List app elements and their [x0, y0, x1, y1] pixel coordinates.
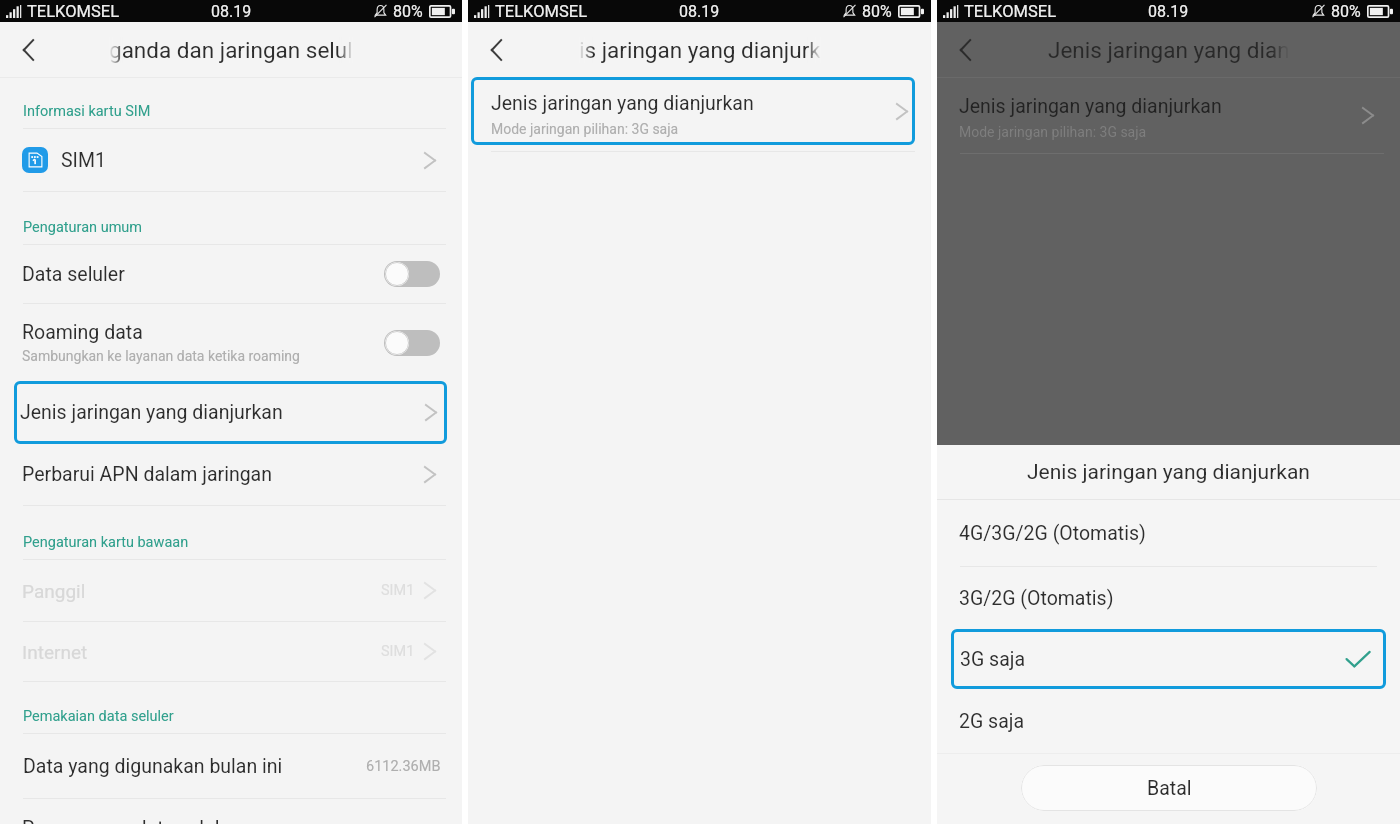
button[interactable]: Data yang digunakan bulan ini [0, 734, 462, 798]
button[interactable] [384, 330, 440, 356]
staticText: Informasi kartu SIM [23, 103, 151, 120]
button[interactable]: 4G/3G/2G (Otomatis) [937, 500, 1400, 566]
staticText: 08.19 [679, 2, 720, 21]
staticText: TELKOMSEL [27, 2, 120, 21]
button[interactable]: 3G saja [951, 629, 1386, 689]
staticText: 08.19 [211, 2, 252, 21]
button[interactable]: Roaming data [0, 304, 462, 381]
staticText: ganda dan jaringan selul [109, 37, 353, 63]
button[interactable]: Back [0, 22, 58, 77]
staticText: 80% [1331, 2, 1361, 21]
button[interactable]: Perbarui APN dalam jaringan [0, 444, 462, 505]
staticText: 2G saja [959, 710, 1025, 733]
button[interactable]: Jenis jaringan yang dianjurkan [471, 77, 915, 145]
staticText: Data seluler [22, 263, 125, 286]
staticText: Roaming data [22, 321, 143, 344]
staticText: 3G saja [960, 648, 1026, 671]
staticText: SIM1 [61, 149, 106, 172]
staticText: 4G/3G/2G (Otomatis) [959, 522, 1146, 545]
staticText: Perbarui APN dalam jaringan [22, 463, 272, 486]
button[interactable]: 2G saja [937, 689, 1400, 753]
staticText: Jenis jaringan yang dianjurkan [491, 92, 754, 115]
button[interactable]: Jenis jaringan yang dianjurkan [14, 381, 447, 444]
staticText: TELKOMSEL [964, 2, 1057, 21]
staticText: SIM1 [381, 643, 415, 660]
staticText: Pengaturan kartu bawaan [23, 534, 189, 551]
staticText: 80% [862, 2, 892, 21]
button[interactable]: Penggunaan data seluler [0, 799, 462, 824]
staticText: Data yang digunakan bulan ini [23, 755, 283, 778]
staticText: Sambungkan ke layanan data ketika roamin… [22, 348, 300, 364]
staticText: Pengaturan umum [23, 219, 143, 236]
staticText: Panggil [22, 580, 86, 602]
staticText: 6112.36MB [366, 758, 441, 775]
button[interactable]: Internet [0, 622, 462, 681]
staticText: Mode jaringan pilihan: 3G saja [491, 121, 679, 137]
button[interactable]: 3G/2G (Otomatis) [937, 567, 1400, 629]
staticText: Jenis jaringan yang dianjurkan [1027, 460, 1310, 485]
staticText: 08.19 [1148, 2, 1189, 21]
staticText: Penggunaan data seluler [22, 817, 237, 824]
staticText: Batal [1147, 777, 1192, 800]
staticText: Jenis jaringan yang dianjurkan [20, 401, 283, 424]
staticText: TELKOMSEL [495, 2, 588, 21]
staticText: SIM1 [381, 582, 415, 599]
staticText: Jenis jaringan yang dian [1048, 37, 1290, 63]
button[interactable]: Back [937, 22, 995, 77]
staticText: Internet [22, 641, 88, 663]
button[interactable]: Data seluler [0, 245, 462, 303]
button[interactable]: SIM1 [0, 129, 462, 191]
staticText: Mode jaringan pilihan: 3G saja [959, 124, 1147, 140]
staticText: 3G/2G (Otomatis) [959, 587, 1114, 610]
button[interactable]: Back [468, 22, 526, 77]
staticText: 80% [393, 2, 423, 21]
button[interactable]: Batal [1021, 765, 1317, 811]
button[interactable]: Panggil [0, 560, 462, 621]
staticText: Jenis jaringan yang dianjurkan [959, 95, 1222, 118]
staticText: Pemakaian data seluler [23, 708, 174, 725]
staticText: is jaringan yang dianjurk [579, 37, 821, 63]
button[interactable] [384, 261, 440, 287]
